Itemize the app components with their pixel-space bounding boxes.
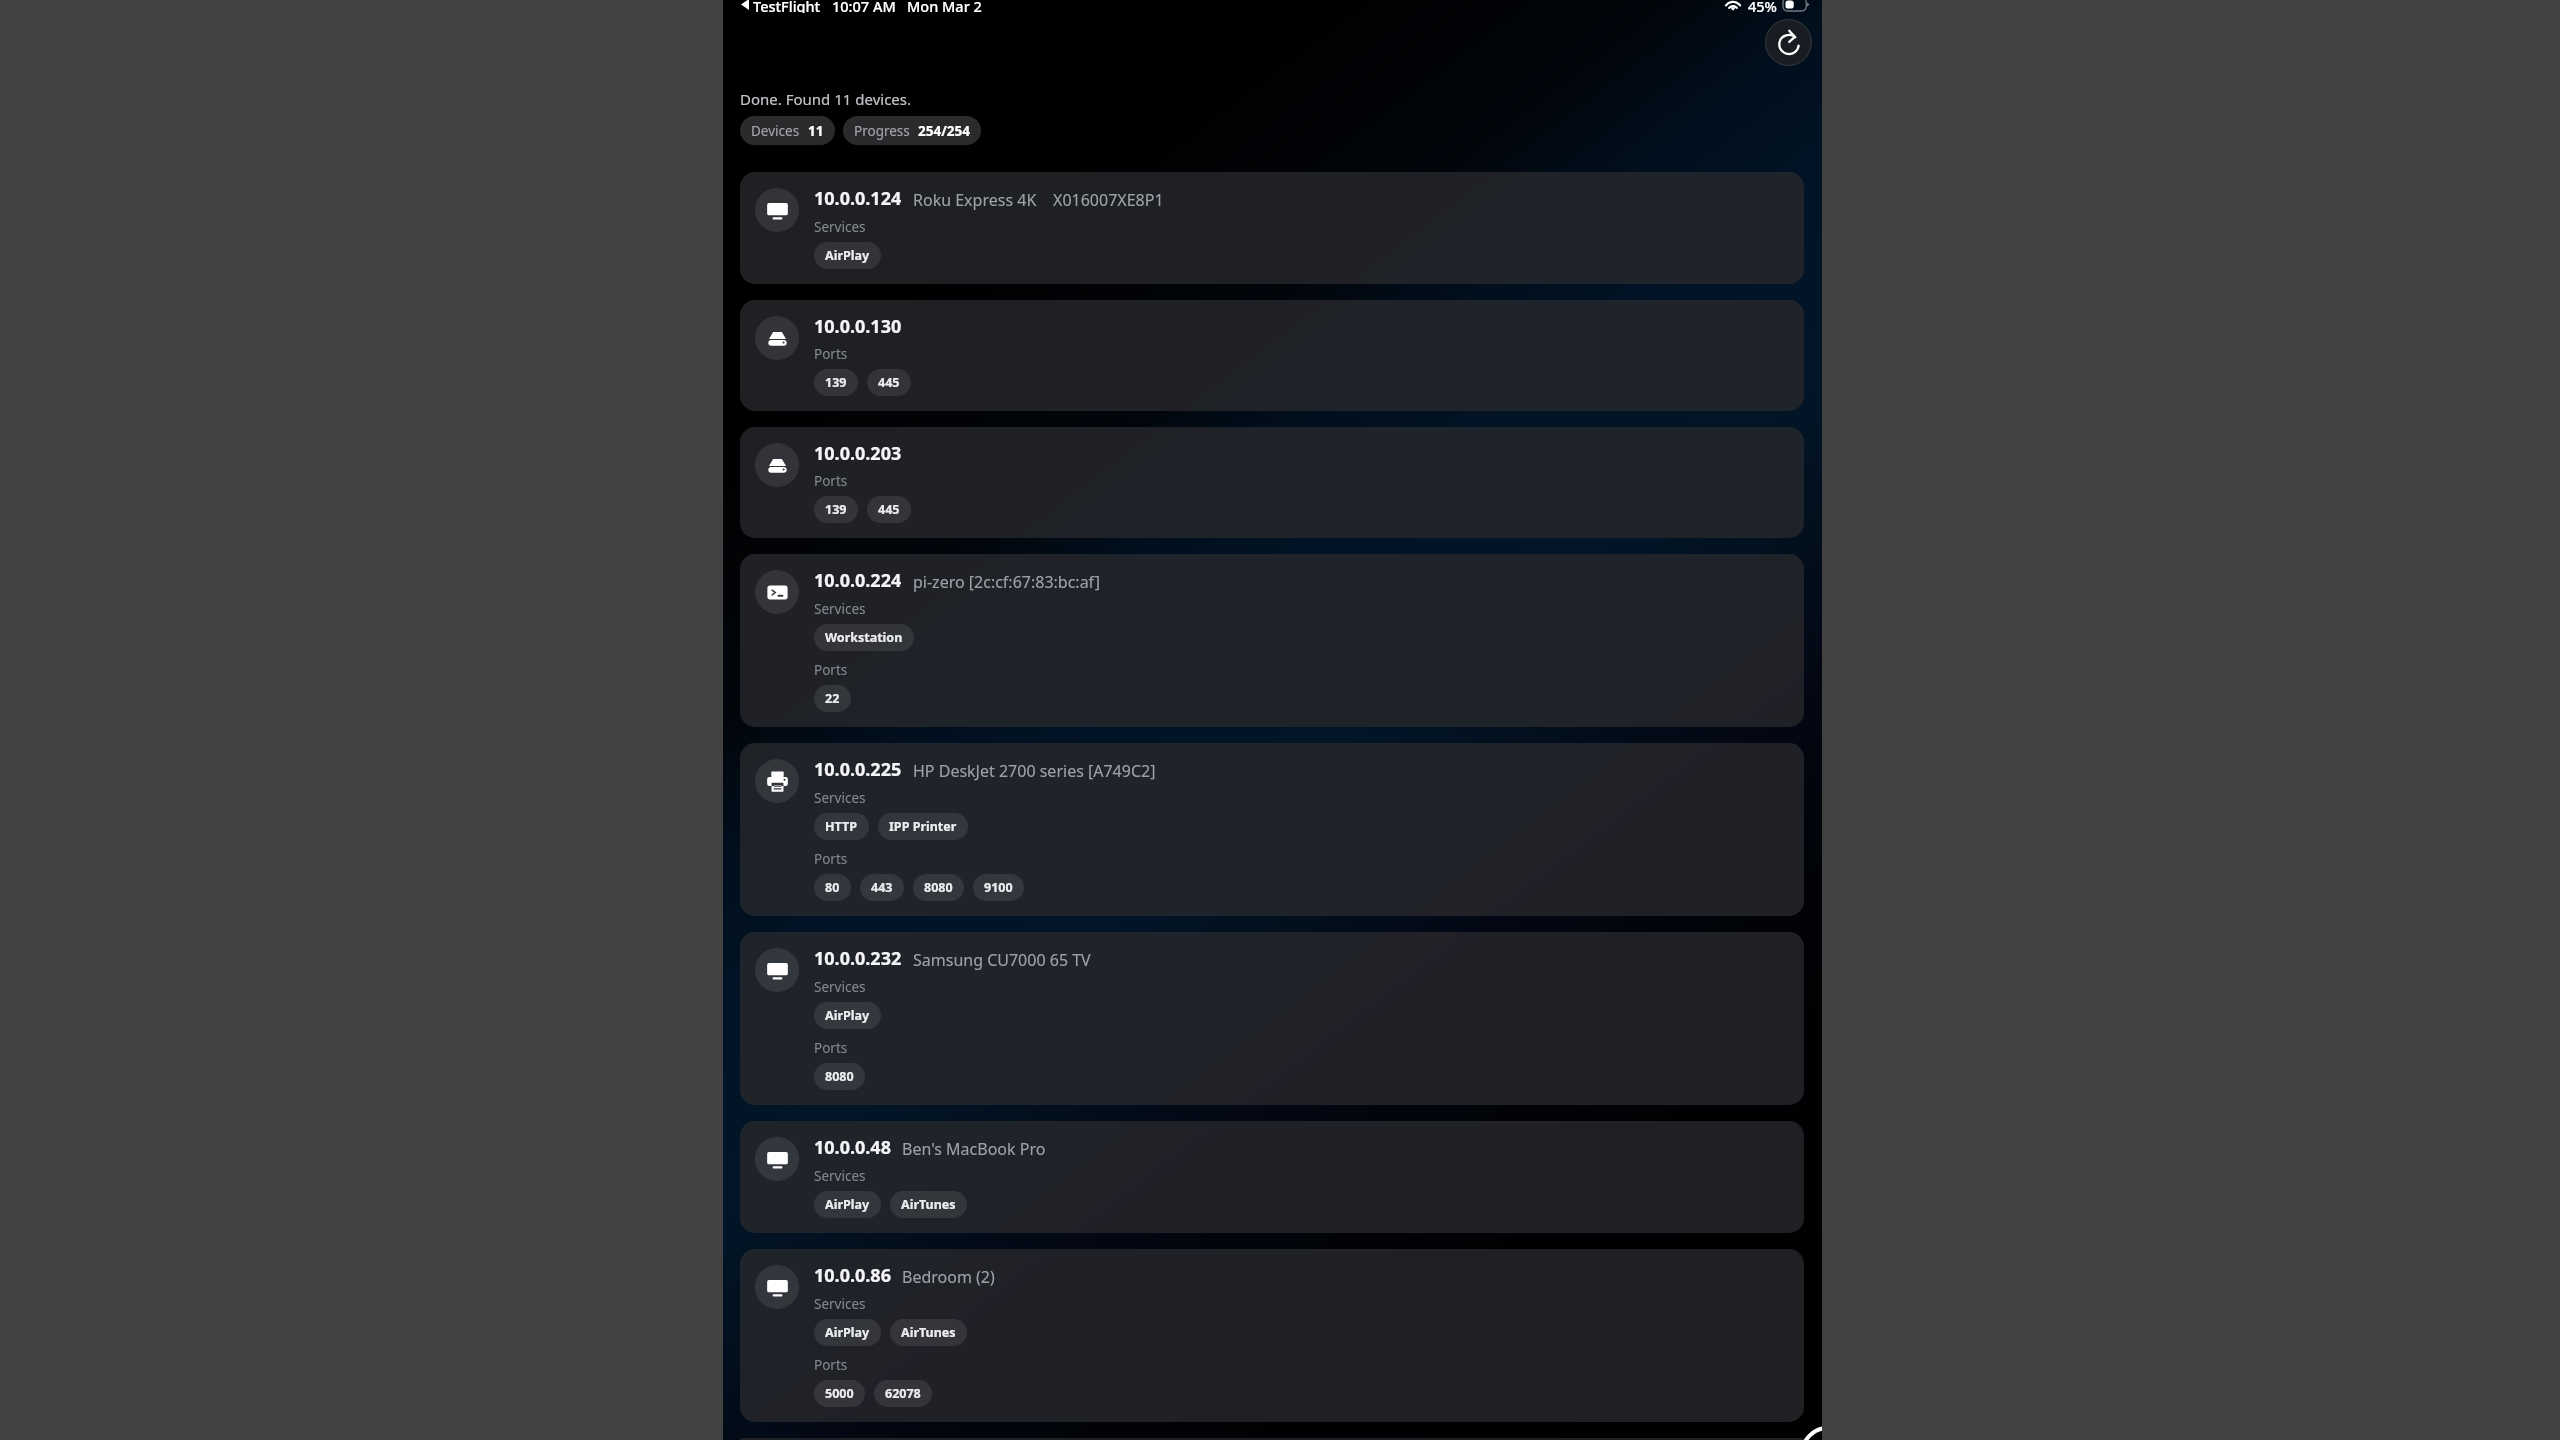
staticText: Ben's MacBook Pro (902, 1138, 1046, 1160)
staticText: 10.0.0.203 (814, 441, 902, 466)
staticText: Services (814, 218, 866, 236)
button[interactable]: AirTunes (890, 1191, 967, 1218)
button[interactable]: 139 (814, 369, 858, 396)
button[interactable]: 10.0.0.203 (740, 427, 1804, 538)
staticText: 62078 (885, 1385, 921, 1402)
staticText: X016007XE8P1 (1053, 189, 1164, 211)
button[interactable]: 10.0.0.124 (740, 172, 1804, 284)
staticText: 139 (825, 374, 847, 391)
staticText: 254/254 (918, 122, 970, 140)
staticText: Ports (814, 661, 848, 679)
staticText: 45% (1748, 0, 1777, 13)
staticText: 11 (808, 122, 824, 140)
button[interactable]: 10.0.0.48 (740, 1121, 1804, 1233)
button[interactable]: AirPlay (814, 1191, 881, 1218)
staticText: Devices (751, 122, 800, 140)
staticText: Bedroom (2) (902, 1266, 995, 1288)
staticText: Services (814, 1167, 866, 1185)
button[interactable]: AirPlay (814, 1319, 881, 1346)
staticText: 139 (825, 501, 847, 518)
button[interactable]: 5000 (814, 1380, 865, 1407)
staticText: Ports (814, 345, 848, 363)
staticText: Ports (814, 472, 848, 490)
staticText: 10.0.0.124 (814, 186, 902, 211)
button[interactable]: IPP Printer (878, 813, 968, 840)
staticText: Done. Found 11 devices. (740, 89, 912, 109)
staticText: Services (814, 600, 866, 618)
staticText: Progress (854, 122, 910, 140)
staticText: HTTP (825, 818, 858, 835)
staticText: 22 (825, 690, 840, 707)
staticText: AirPlay (825, 247, 870, 264)
staticText: AirPlay (825, 1196, 870, 1213)
staticText: 9100 (984, 879, 1013, 896)
button[interactable]: 10.0.0.86 (740, 1249, 1804, 1422)
button[interactable]: 62078 (874, 1380, 932, 1407)
staticText: Services (814, 789, 866, 807)
staticText: Samsung CU7000 65 TV (913, 949, 1091, 971)
staticText: Services (814, 1295, 866, 1313)
button[interactable]: 22 (814, 685, 851, 712)
staticText: 8080 (924, 879, 953, 896)
button[interactable]: 8080 (913, 874, 964, 901)
staticText: IPP Printer (889, 818, 957, 835)
button[interactable]: Devices (740, 116, 835, 145)
button[interactable]: 139 (814, 496, 858, 523)
staticText: Mon Mar 2 (907, 0, 982, 13)
staticText: AirPlay (825, 1324, 870, 1341)
staticText: Ports (814, 850, 848, 868)
button[interactable]: 8080 (814, 1063, 865, 1090)
button[interactable]: AirPlay (814, 1002, 881, 1029)
button[interactable]: 10.0.0.225 (740, 743, 1804, 916)
button[interactable]: HTTP (814, 813, 869, 840)
staticText: 445 (878, 374, 900, 391)
staticText: 10.0.0.224 (814, 568, 902, 593)
staticText: 8080 (825, 1068, 854, 1085)
button[interactable]: Progress (843, 116, 981, 145)
staticText: 10.0.0.232 (814, 946, 902, 971)
staticText: 443 (871, 879, 893, 896)
button[interactable]: Refresh (1765, 19, 1812, 66)
staticText: HP DeskJet 2700 series [A749C2] (913, 760, 1156, 782)
staticText: 10.0.0.48 (814, 1135, 891, 1160)
staticText: Services (814, 978, 866, 996)
staticText: Ports (814, 1356, 848, 1374)
staticText: 10.0.0.225 (814, 757, 902, 782)
button[interactable]: 10.0.0.224 (740, 554, 1804, 727)
staticText: 10:07 AM (832, 0, 896, 13)
button[interactable]: 443 (860, 874, 904, 901)
staticText: 445 (878, 501, 900, 518)
button[interactable]: 10.0.0.232 (740, 932, 1804, 1105)
button[interactable]: 10.0.0.130 (740, 300, 1804, 411)
staticText: AirPlay (825, 1007, 870, 1024)
button[interactable]: AirPlay (814, 242, 881, 269)
staticText: 10.0.0.86 (814, 1263, 891, 1288)
staticText: 5000 (825, 1385, 854, 1402)
button[interactable]: 80 (814, 874, 851, 901)
button[interactable]: 445 (867, 496, 911, 523)
staticText: 80 (825, 879, 840, 896)
staticText: Roku Express 4K (913, 189, 1037, 211)
staticText: pi-zero [2c:cf:67:83:bc:af] (913, 571, 1101, 593)
staticText: Ports (814, 1039, 848, 1057)
button[interactable]: 445 (867, 369, 911, 396)
staticText: AirTunes (901, 1324, 956, 1341)
button[interactable]: 9100 (973, 874, 1024, 901)
staticText: Workstation (825, 629, 903, 646)
staticText: TestFlight (753, 0, 821, 13)
staticText: 10.0.0.130 (814, 314, 902, 339)
staticText: AirTunes (901, 1196, 956, 1213)
button[interactable]: Workstation (814, 624, 914, 651)
button[interactable]: AirTunes (890, 1319, 967, 1346)
